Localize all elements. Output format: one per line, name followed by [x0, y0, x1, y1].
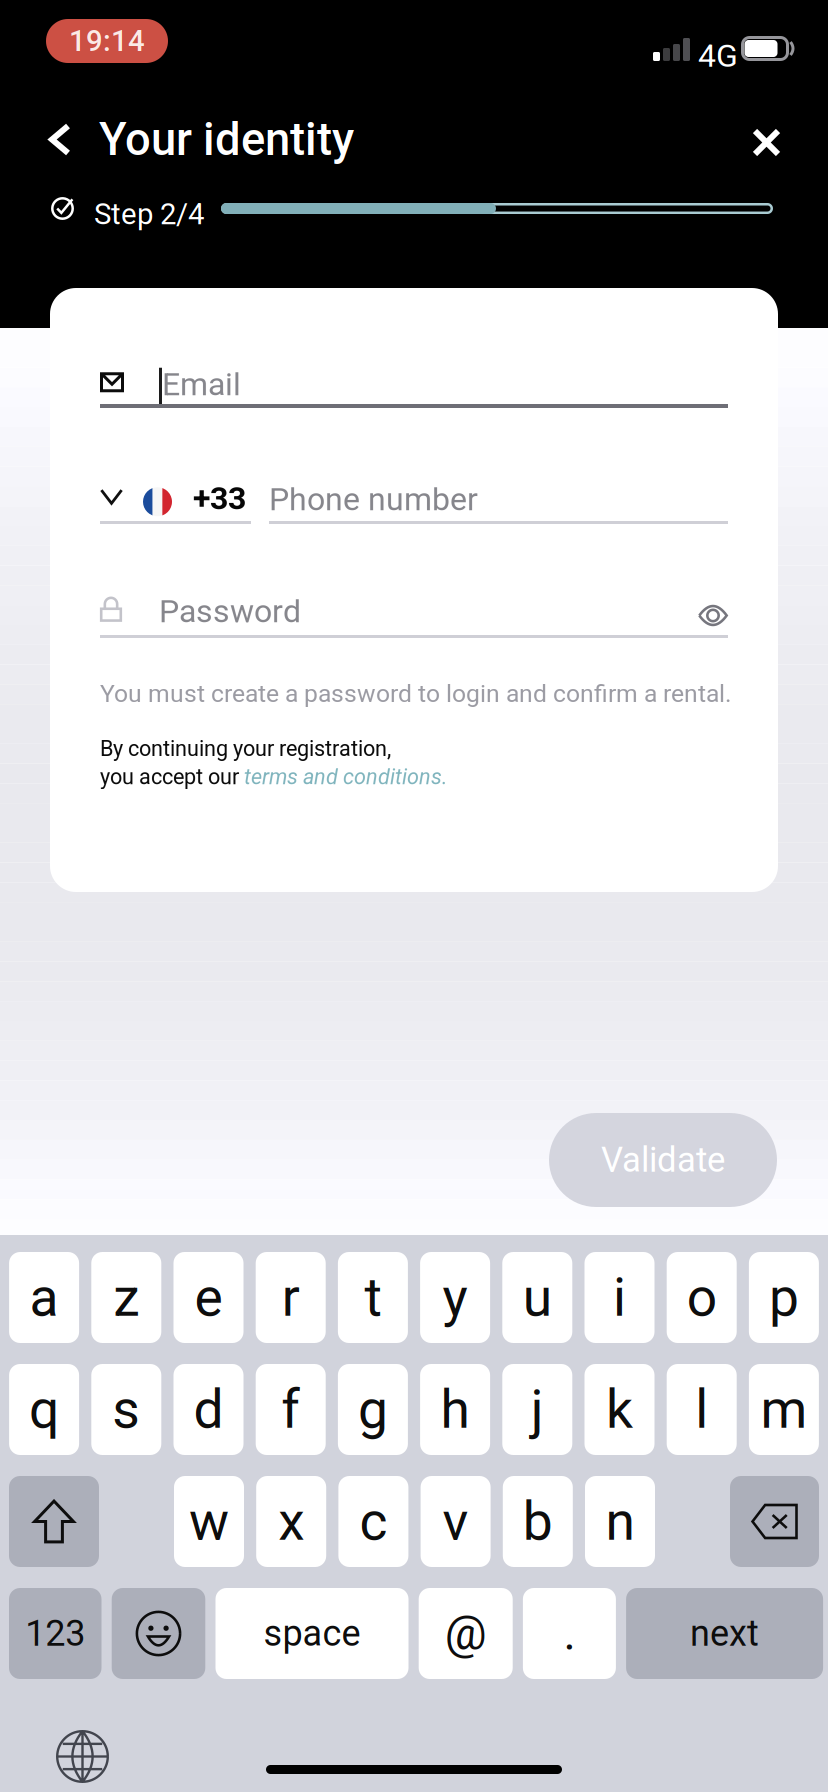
- staticText: space: [263, 1612, 360, 1655]
- button[interactable]: w: [174, 1476, 244, 1567]
- button[interactable]: z: [91, 1252, 161, 1343]
- button[interactable]: f: [256, 1364, 326, 1455]
- button[interactable]: Email: [100, 360, 728, 408]
- button[interactable]: l: [667, 1364, 737, 1455]
- button[interactable]: m: [749, 1364, 819, 1455]
- button[interactable]: h: [420, 1364, 490, 1455]
- button[interactable]: next: [626, 1588, 823, 1679]
- button[interactable]: b: [503, 1476, 573, 1567]
- button[interactable]: Next keyboard: [34, 1712, 131, 1792]
- staticText: t: [364, 1266, 381, 1329]
- staticText: g: [358, 1378, 388, 1441]
- staticText: Phone number: [269, 480, 478, 518]
- staticText: o: [687, 1266, 717, 1329]
- button[interactable]: +33: [100, 482, 251, 524]
- staticText: y: [443, 1266, 468, 1329]
- button[interactable]: i: [584, 1252, 654, 1343]
- button[interactable]: Validate: [549, 1113, 777, 1207]
- button[interactable]: o: [667, 1252, 737, 1343]
- staticText: c: [359, 1490, 387, 1553]
- button[interactable]: e: [173, 1252, 243, 1343]
- button[interactable]: Back: [25, 103, 95, 176]
- button[interactable]: Delete: [730, 1476, 819, 1567]
- button[interactable]: j: [502, 1364, 572, 1455]
- staticText: s: [112, 1378, 140, 1441]
- staticText: 4G: [698, 37, 738, 74]
- staticText: e: [194, 1266, 222, 1329]
- staticText: w: [189, 1490, 229, 1553]
- button[interactable]: q: [9, 1364, 79, 1455]
- button[interactable]: terms and conditions.: [244, 764, 448, 790]
- staticText: By continuing your registration,: [100, 736, 391, 761]
- button[interactable]: g: [338, 1364, 408, 1455]
- staticText: x: [278, 1490, 304, 1553]
- staticText: terms and conditions.: [244, 764, 448, 790]
- staticText: z: [113, 1266, 139, 1329]
- staticText: k: [606, 1378, 633, 1441]
- staticText: u: [523, 1266, 552, 1329]
- staticText: Your identity: [99, 113, 354, 166]
- staticText: r: [282, 1266, 300, 1329]
- staticText: 19:14: [69, 24, 145, 58]
- staticText: v: [443, 1490, 469, 1553]
- staticText: you accept our: [100, 764, 244, 790]
- button[interactable]: @: [419, 1588, 513, 1679]
- button[interactable]: r: [256, 1252, 326, 1343]
- staticText: Step 2/4: [94, 197, 204, 231]
- button[interactable]: 123: [9, 1588, 101, 1679]
- staticText: 123: [25, 1612, 85, 1655]
- button[interactable]: Password: [100, 590, 660, 632]
- staticText: d: [193, 1378, 223, 1441]
- staticText: .: [563, 1606, 575, 1661]
- button[interactable]: c: [338, 1476, 408, 1567]
- staticText: You must create a password to login and …: [100, 679, 732, 708]
- staticText: q: [29, 1378, 59, 1441]
- button[interactable]: v: [421, 1476, 491, 1567]
- staticText: Password: [159, 592, 301, 630]
- button[interactable]: Emoji: [112, 1588, 205, 1679]
- staticText: next: [690, 1612, 759, 1655]
- button[interactable]: y: [420, 1252, 490, 1343]
- button[interactable]: Shift: [9, 1476, 99, 1567]
- staticText: Validate: [601, 1140, 725, 1180]
- staticText: h: [441, 1378, 470, 1441]
- staticText: l: [695, 1378, 708, 1441]
- staticText: b: [523, 1490, 553, 1553]
- staticText: +33: [193, 479, 246, 517]
- staticText: p: [769, 1266, 799, 1329]
- button[interactable]: k: [584, 1364, 654, 1455]
- staticText: f: [281, 1378, 300, 1441]
- staticText: @: [445, 1606, 487, 1661]
- staticText: j: [531, 1378, 544, 1441]
- staticText: m: [760, 1378, 807, 1441]
- button[interactable]: space: [215, 1588, 408, 1679]
- button[interactable]: t: [338, 1252, 408, 1343]
- staticText: a: [30, 1266, 59, 1329]
- button[interactable]: Phone number: [269, 482, 728, 524]
- staticText: i: [613, 1266, 626, 1329]
- button[interactable]: Close: [730, 106, 803, 179]
- button[interactable]: u: [502, 1252, 572, 1343]
- button[interactable]: x: [256, 1476, 326, 1567]
- button[interactable]: d: [173, 1364, 243, 1455]
- button[interactable]: .: [523, 1588, 616, 1679]
- button[interactable]: a: [9, 1252, 79, 1343]
- button[interactable]: n: [585, 1476, 655, 1567]
- button[interactable]: s: [91, 1364, 161, 1455]
- button[interactable]: Show password: [660, 584, 728, 638]
- button[interactable]: p: [749, 1252, 819, 1343]
- staticText: n: [605, 1490, 634, 1553]
- staticText: Email: [162, 365, 241, 403]
